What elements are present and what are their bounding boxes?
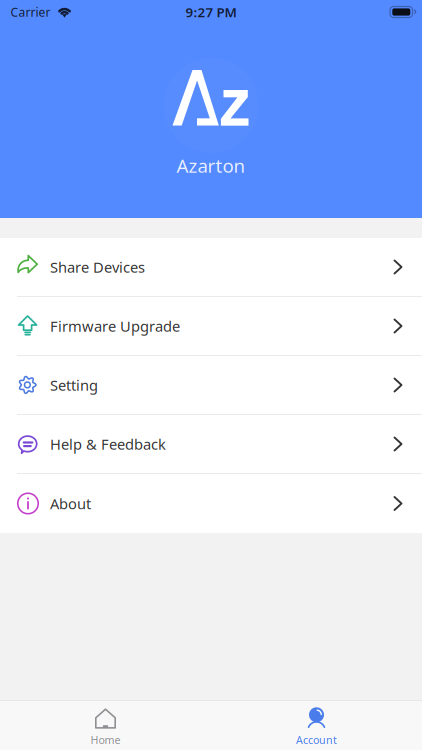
button[interactable]: About <box>0 474 422 533</box>
staticText: Account <box>296 733 337 747</box>
button[interactable]: Firmware Upgrade <box>0 297 422 356</box>
staticText: Help & Feedback <box>50 434 166 454</box>
button[interactable]: Help & Feedback <box>0 415 422 474</box>
button[interactable]: Share Devices <box>0 238 422 297</box>
button[interactable]: Home <box>0 701 211 750</box>
staticText: Carrier <box>10 4 50 20</box>
staticText: About <box>50 494 91 513</box>
button[interactable]: Account <box>211 701 422 750</box>
button[interactable]: Setting <box>0 356 422 415</box>
staticText: Share Devices <box>50 257 145 277</box>
staticText: Azarton <box>176 153 245 178</box>
staticText: Firmware Upgrade <box>50 316 180 336</box>
staticText: Home <box>90 733 120 747</box>
staticText: Setting <box>50 375 98 395</box>
staticText: 9:27 PM <box>185 3 236 21</box>
